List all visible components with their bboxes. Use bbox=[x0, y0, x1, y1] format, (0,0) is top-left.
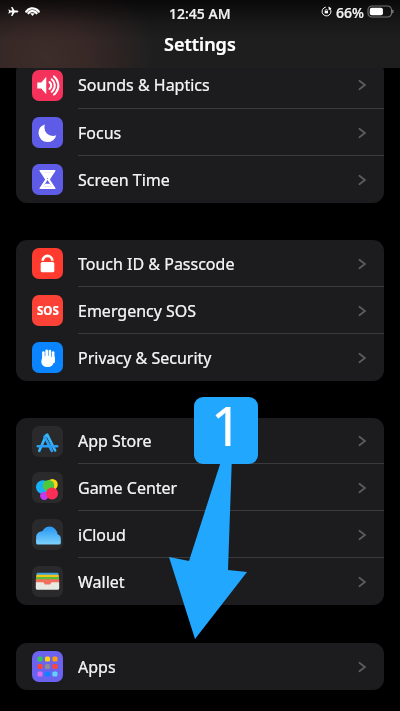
staticText: 1 bbox=[211, 397, 242, 455]
button[interactable]: SOS bbox=[16, 287, 384, 334]
staticText: Settings bbox=[164, 32, 236, 57]
staticText: iCloud bbox=[78, 524, 126, 546]
button[interactable]: Screen Time bbox=[16, 156, 384, 203]
button[interactable]: Sounds & Haptics bbox=[16, 61, 384, 109]
staticText: Screen Time bbox=[78, 169, 170, 191]
staticText: 66% bbox=[336, 3, 364, 22]
button[interactable]: Wallet bbox=[16, 558, 384, 605]
button[interactable]: Focus bbox=[16, 109, 384, 156]
button[interactable]: iCloud bbox=[16, 511, 384, 558]
staticText: Emergency SOS bbox=[78, 300, 197, 322]
button[interactable]: Touch ID & Passcode bbox=[16, 240, 384, 287]
staticText: Apps bbox=[78, 656, 116, 678]
staticText: Wallet bbox=[78, 571, 125, 593]
button[interactable]: App Store bbox=[16, 418, 384, 464]
staticText: Game Center bbox=[78, 477, 178, 499]
staticText: Touch ID & Passcode bbox=[78, 253, 235, 275]
staticText: Privacy & Security bbox=[78, 347, 212, 369]
staticText: Sounds & Haptics bbox=[78, 74, 210, 96]
staticText: 12:45 AM bbox=[169, 4, 231, 23]
button[interactable]: 1 bbox=[194, 397, 258, 464]
staticText: App Store bbox=[78, 430, 152, 452]
other: Step 1 pointer bbox=[0, 0, 400, 711]
button[interactable]: Game Center bbox=[16, 464, 384, 511]
staticText: SOS bbox=[37, 303, 59, 319]
button[interactable]: Apps bbox=[16, 643, 384, 690]
staticText: Focus bbox=[78, 122, 122, 144]
button[interactable]: Privacy & Security bbox=[16, 334, 384, 381]
